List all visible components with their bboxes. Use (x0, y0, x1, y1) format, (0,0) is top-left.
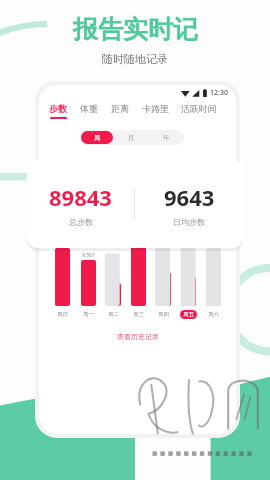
staticText: 周 (94, 134, 101, 142)
staticText: 周日 (57, 311, 68, 318)
button[interactable]: 12,567 (49, 201, 75, 306)
button[interactable]: 9,567 (75, 201, 101, 306)
staticText: 12:30 (210, 88, 228, 98)
button[interactable]: 3,612 (176, 201, 201, 306)
button[interactable]: 活跃时间 (181, 103, 217, 117)
staticText: 体重 (80, 103, 98, 114)
staticText: 周四 (158, 311, 169, 318)
button[interactable]: 周 (81, 131, 113, 144)
button[interactable]: 月 (115, 131, 148, 144)
staticText: 周六 (208, 311, 219, 318)
staticText: 卡路里 (142, 103, 169, 114)
button[interactable]: 年 (150, 131, 183, 144)
staticText: 周五 (183, 311, 194, 318)
staticText: 89843 (49, 182, 112, 212)
button[interactable]: 卡路里 (142, 103, 169, 117)
button[interactable]: 13,643 (126, 201, 151, 306)
button[interactable]: 9643 (135, 182, 243, 227)
staticText: 步数 (49, 103, 67, 114)
button[interactable]: 89843 (27, 182, 134, 227)
button[interactable]: 查看历史记录 (111, 330, 165, 343)
staticText: 周三 (133, 311, 144, 318)
button[interactable]: 4,024 (151, 201, 176, 306)
button[interactable]: 步数 (49, 103, 67, 119)
staticText: 随时随地记录 (102, 52, 168, 66)
staticText: 9,567 (82, 252, 95, 259)
button[interactable]: 距离 (111, 103, 129, 117)
button[interactable]: 3,367 (101, 201, 126, 306)
button[interactable]: 0 (201, 201, 226, 306)
staticText: 总步数 (69, 217, 93, 227)
staticText: 周二 (108, 311, 119, 318)
staticText: 活跃时间 (181, 103, 217, 114)
staticText: 距离 (111, 103, 129, 114)
staticText: 报告实时记 (73, 14, 198, 45)
staticText: 月 (128, 134, 135, 142)
staticText: 周一 (83, 311, 94, 318)
button[interactable]: 体重 (80, 103, 98, 117)
staticText: 13,643 (131, 212, 147, 219)
staticText: 日均步数 (173, 217, 205, 227)
staticText: 年 (163, 134, 170, 142)
staticText: 9643 (164, 182, 215, 212)
staticText: 查看历史记录 (117, 332, 159, 341)
